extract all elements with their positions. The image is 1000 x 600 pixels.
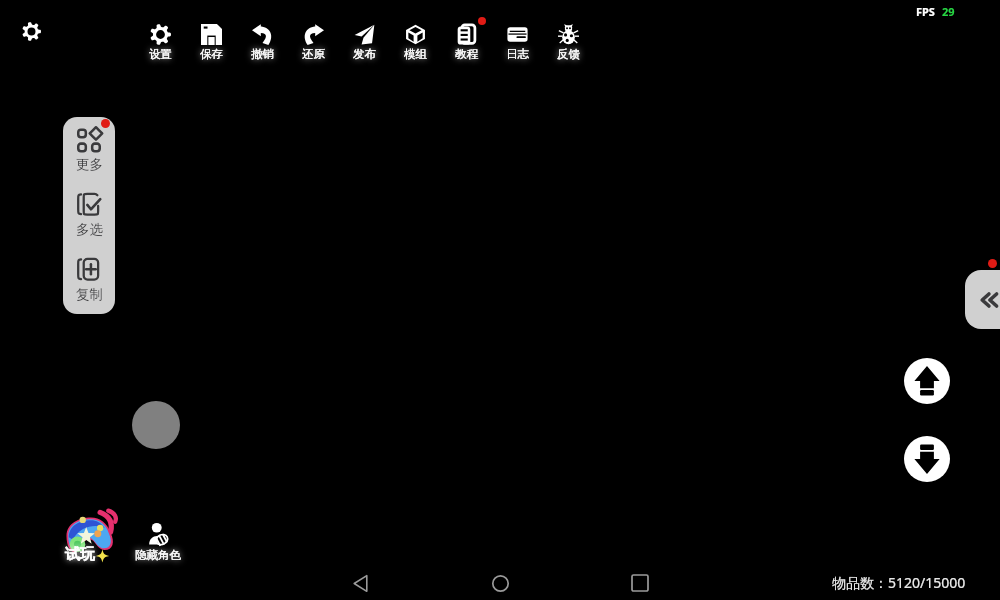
staticText: 还原 [302, 47, 325, 61]
staticText: 模组 [404, 47, 427, 61]
button[interactable]: Expand panel [965, 270, 1000, 329]
staticText: 物品数：5120/15000 [832, 573, 966, 592]
button[interactable]: 隐藏角色 [134, 522, 181, 562]
staticText: 试玩 [65, 545, 95, 564]
button[interactable]: Move up [904, 358, 950, 404]
staticText: 多选 [76, 221, 103, 238]
button[interactable]: 复制 [63, 247, 115, 312]
button[interactable]: 反馈 [543, 18, 593, 62]
staticText: 更多 [76, 156, 103, 173]
button[interactable]: 日志 [492, 18, 542, 62]
staticText: 保存 [200, 47, 223, 61]
staticText: 日志 [506, 47, 529, 61]
staticText: 教程 [455, 47, 478, 61]
staticText: 设置 [149, 47, 172, 61]
button[interactable]: 还原 [288, 18, 338, 62]
button[interactable]: 模组 [390, 18, 440, 62]
staticText: 撤销 [251, 47, 274, 61]
staticText: 反馈 [557, 47, 580, 61]
button[interactable]: 试玩 [63, 506, 121, 564]
staticText: 还原 [302, 47, 325, 61]
button[interactable]: Settings [18, 18, 44, 44]
staticText: 日志 [506, 47, 529, 61]
button[interactable]: Move down [904, 436, 950, 482]
staticText: 试玩 [65, 545, 95, 564]
button[interactable]: Home [484, 567, 516, 599]
button[interactable]: 发布 [339, 18, 389, 62]
button[interactable]: Joystick [132, 401, 180, 449]
button[interactable]: 多选 [63, 182, 115, 247]
button[interactable]: Recents [624, 567, 656, 599]
staticText: 发布 [353, 47, 376, 61]
staticText: 保存 [200, 47, 223, 61]
button[interactable]: 设置 [135, 18, 185, 62]
staticText: 隐藏角色 [135, 548, 181, 562]
button[interactable]: 更多 [63, 117, 115, 182]
button[interactable]: 撤销 [237, 18, 287, 62]
staticText: 撤销 [251, 47, 274, 61]
staticText: FPS [916, 4, 935, 19]
staticText: 设置 [149, 47, 172, 61]
button[interactable]: Back [344, 567, 376, 599]
staticText: 教程 [455, 47, 478, 61]
staticText: 发布 [353, 47, 376, 61]
staticText: 复制 [76, 286, 103, 303]
staticText: 隐藏角色 [135, 548, 181, 562]
staticText: 反馈 [557, 47, 580, 61]
button[interactable]: 教程 [441, 18, 491, 62]
staticText: 模组 [404, 47, 427, 61]
button[interactable]: 保存 [186, 18, 236, 62]
staticText: 29 [942, 4, 955, 19]
